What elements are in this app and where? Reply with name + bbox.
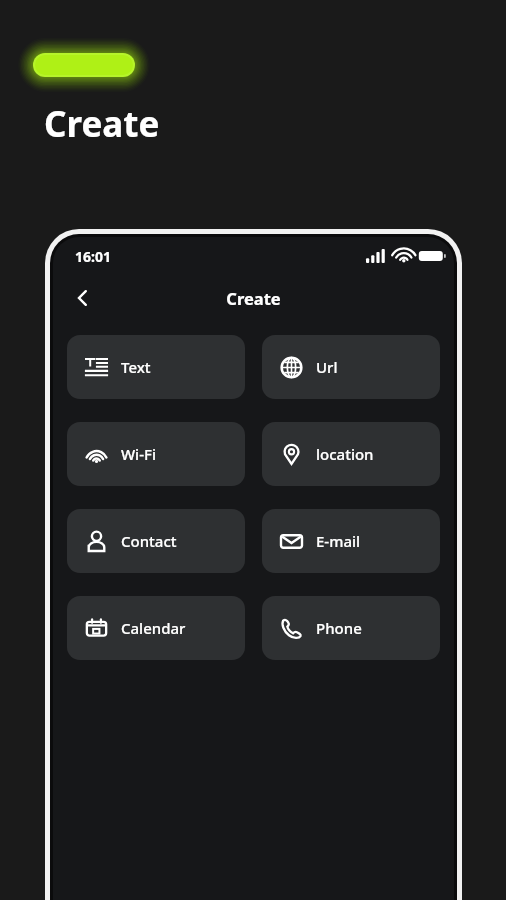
staticText: Create: [44, 100, 160, 148]
button[interactable]: Phone: [262, 596, 440, 660]
button[interactable]: Url: [262, 335, 440, 399]
staticText: Wi-Fi: [121, 444, 156, 464]
staticText: Url: [316, 357, 338, 377]
button[interactable]: Calendar: [67, 596, 245, 660]
staticText: 16:01: [75, 247, 111, 266]
staticText: Create: [226, 287, 281, 309]
button[interactable]: Text: [67, 335, 245, 399]
button[interactable]: Back: [63, 278, 103, 318]
staticText: Text: [121, 357, 151, 377]
button[interactable]: Wi-Fi: [67, 422, 245, 486]
staticText: Phone: [316, 618, 362, 638]
staticText: location: [316, 444, 374, 464]
button[interactable]: Contact: [67, 509, 245, 573]
staticText: E-mail: [316, 531, 361, 551]
button[interactable]: E-mail: [262, 509, 440, 573]
button[interactable]: location: [262, 422, 440, 486]
staticText: Calendar: [121, 618, 186, 638]
staticText: Contact: [121, 531, 177, 551]
